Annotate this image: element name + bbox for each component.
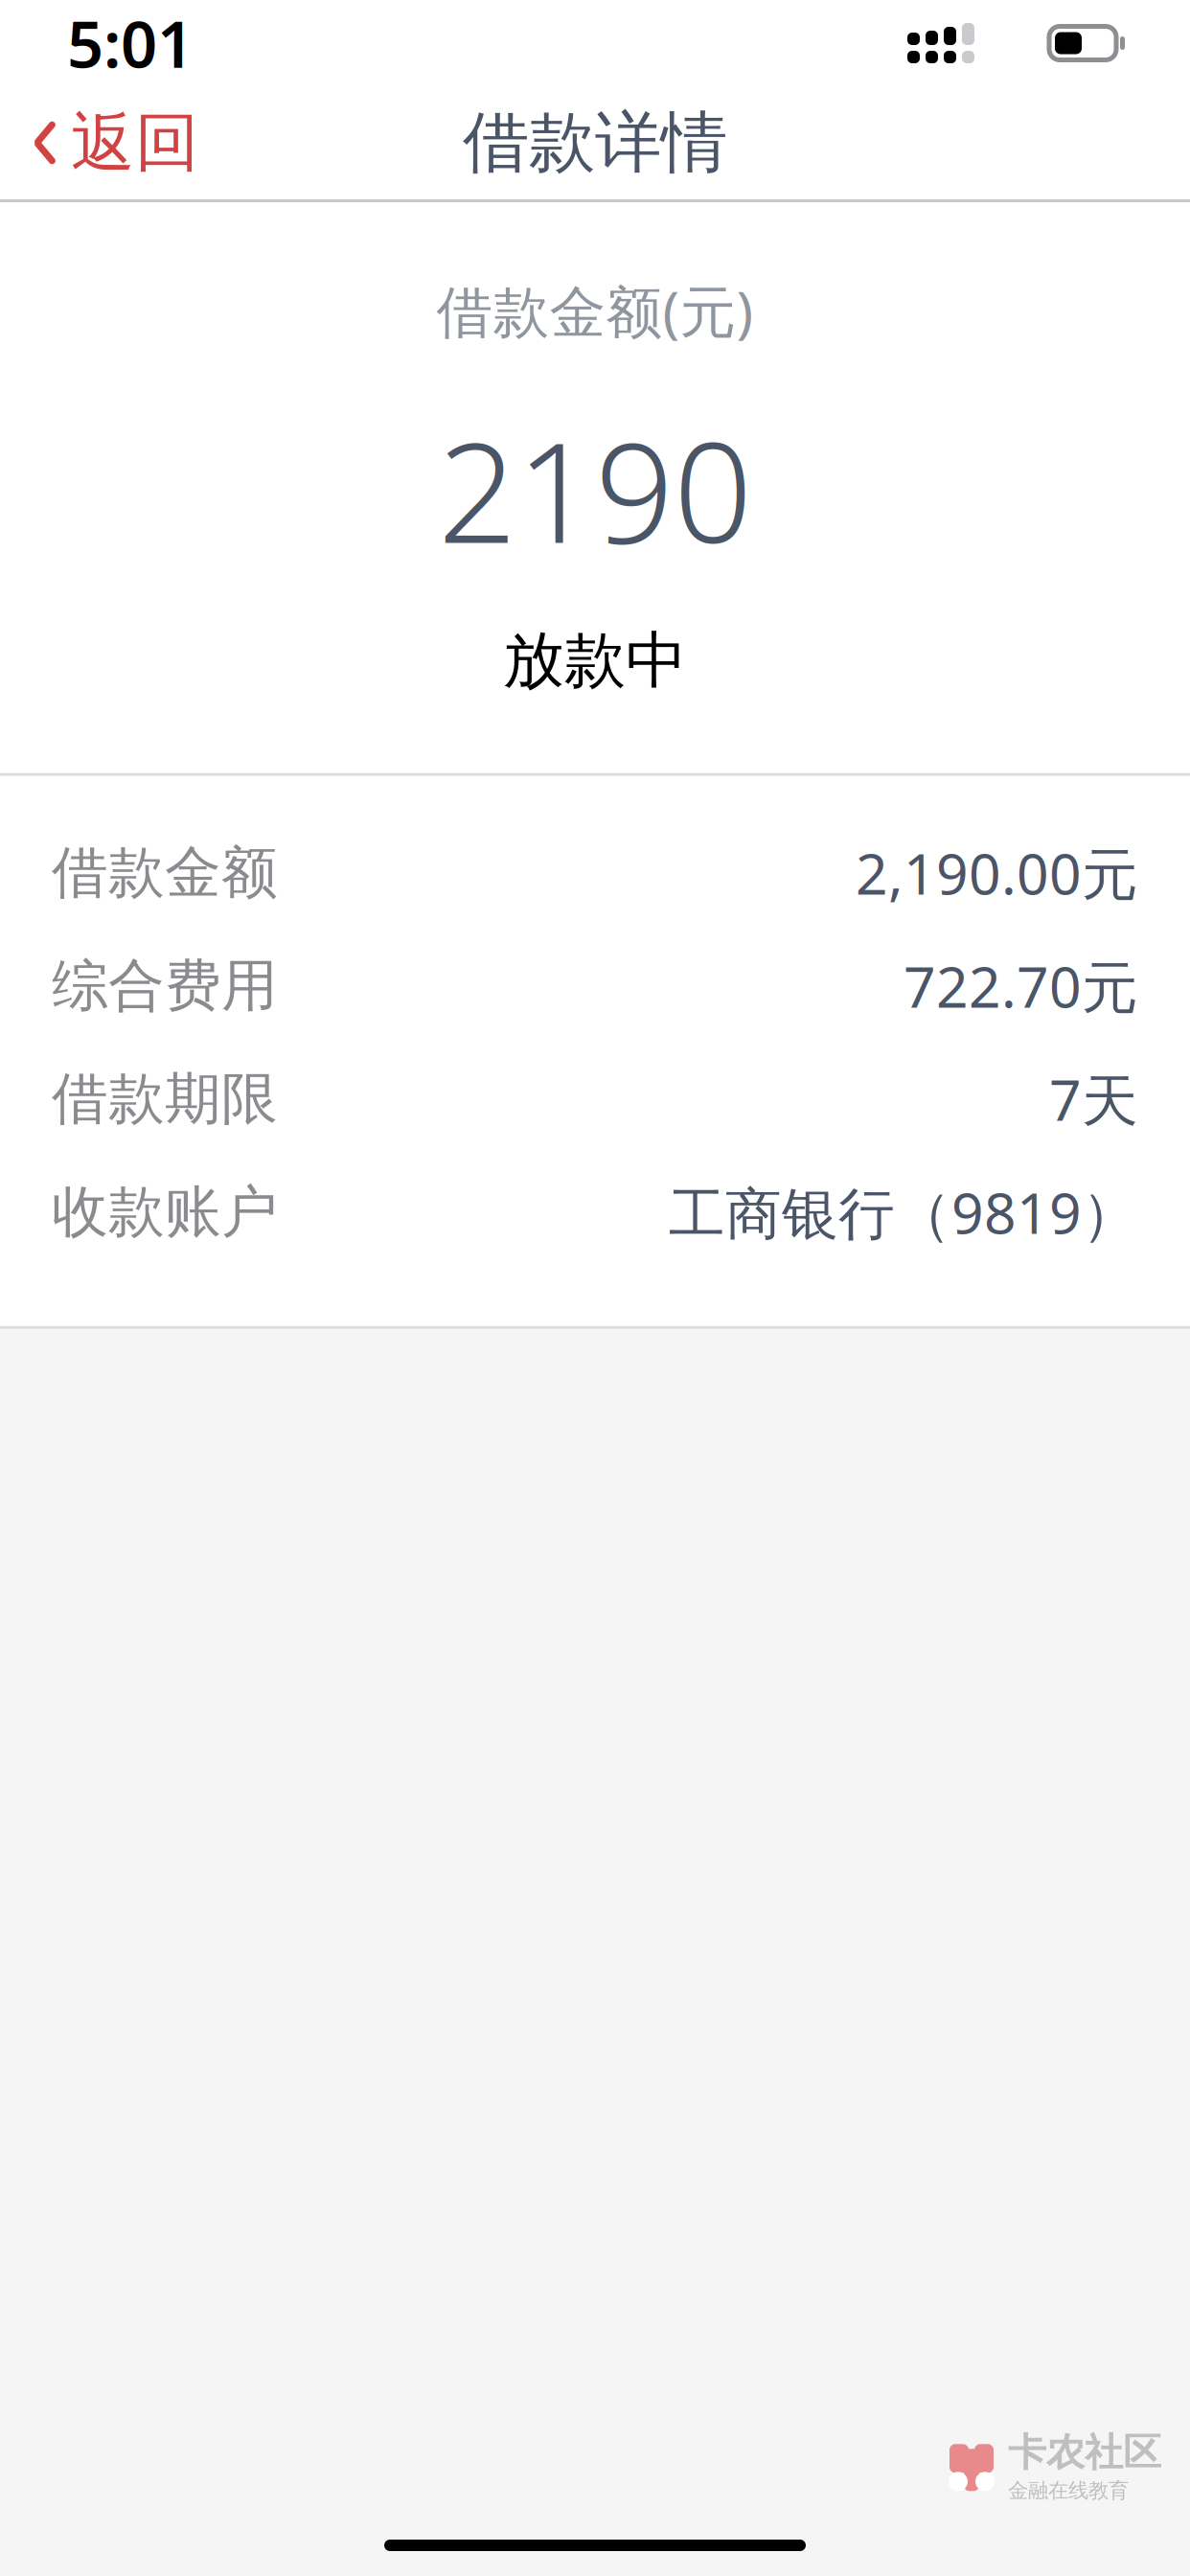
staticText: 5:01 [67, 1, 194, 85]
staticText: 工商银行（9819） [669, 1175, 1138, 1249]
staticText: 7天 [1049, 1062, 1138, 1136]
staticText: 放款中 [503, 623, 687, 698]
staticText: 2190 [438, 398, 752, 581]
staticText: 返回 [71, 104, 199, 182]
staticText: 收款账户 [52, 1178, 278, 1247]
staticText: 卡农社区 [1008, 2429, 1161, 2476]
staticText: 722.70元 [904, 949, 1138, 1023]
staticText: 借款金额 [52, 838, 278, 907]
staticText: 借款详情 [463, 102, 727, 184]
staticText: 综合费用 [52, 951, 278, 1020]
staticText: 借款金额(元) [436, 273, 754, 348]
staticText: 2,190.00元 [856, 835, 1138, 910]
staticText: 借款期限 [52, 1064, 278, 1134]
button[interactable]: 返回 [0, 86, 199, 199]
staticText: 金融在线教育 [1008, 2478, 1129, 2503]
